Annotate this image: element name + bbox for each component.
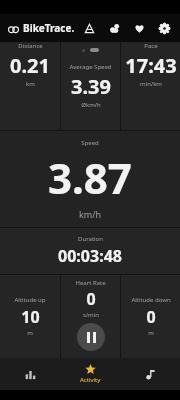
button[interactable]: Pace [121,42,180,88]
staticText: Altitude down [131,296,171,304]
button[interactable]: Altitude up [0,275,60,358]
staticText: Distance [18,42,43,50]
staticText: m [27,329,33,337]
button[interactable]: Settings [156,20,172,36]
button[interactable]: Music [120,358,180,390]
staticText: 3.87 [48,149,132,206]
staticText: 17:43 [125,52,177,79]
staticText: min/km [140,80,162,88]
button[interactable]: Average Speed [61,42,120,130]
button[interactable]: Altitude down [121,275,180,358]
staticText: Heart Rate [75,279,106,287]
staticText: s/min [83,311,99,319]
button[interactable]: Routes [81,20,97,36]
button[interactable]: Duration [0,228,180,274]
staticText: 0 [146,306,156,328]
staticText: Activity [80,376,101,384]
staticText: 3.39 [71,73,111,100]
button[interactable]: Speed [0,131,180,227]
staticText: 10 [21,306,40,328]
staticText: Pace [144,42,158,50]
button[interactable]: Favorites [131,20,147,36]
staticText: 00:03:48 [58,245,122,267]
staticText: 0 [86,288,96,310]
staticText: Økm/h [81,101,101,109]
button[interactable]: Weather [106,20,122,36]
button[interactable]: Distance [0,42,60,88]
staticText: km [26,80,35,88]
button[interactable]: Activity [60,358,120,390]
staticText: Average Speed [69,63,112,71]
button[interactable]: Statistics [0,358,60,390]
staticText: BikeTrace. [23,21,75,35]
staticText: 0.21 [10,52,50,79]
staticText: Speed [81,139,99,147]
staticText: km/h [79,208,102,220]
button[interactable]: Pause [77,323,105,351]
staticText: Altitude up [14,296,46,304]
staticText: Duration [78,235,103,243]
staticText: m [148,329,154,337]
